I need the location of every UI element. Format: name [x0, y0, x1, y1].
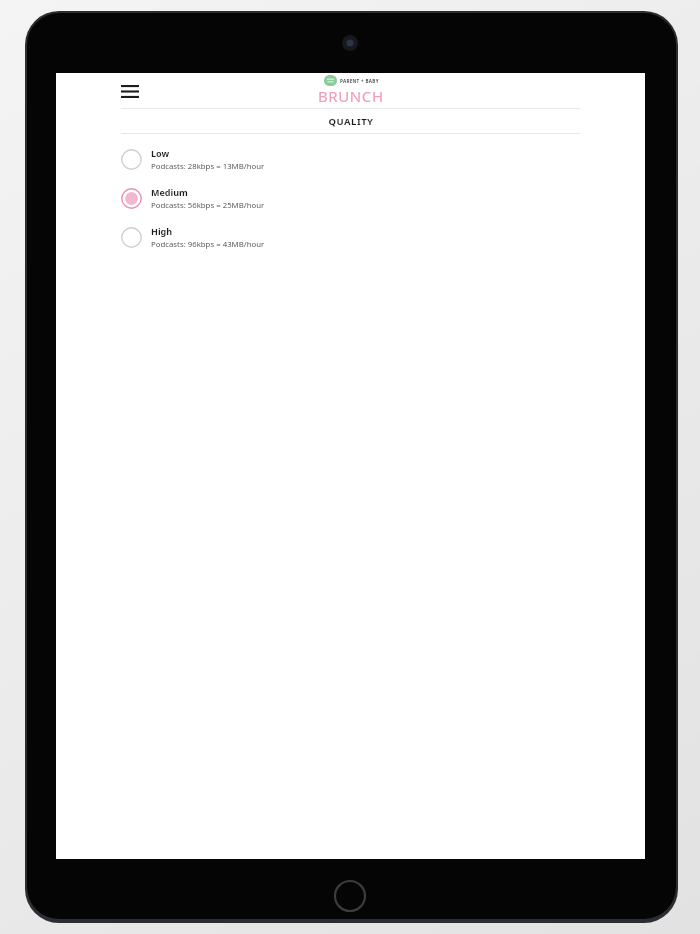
button[interactable]: High: [56, 218, 645, 257]
button[interactable]: Low: [56, 140, 645, 179]
staticText: Podcasts: 96kbps = 43MB/hour: [151, 239, 265, 250]
staticText: Podcasts: 56kbps = 25MB/hour: [151, 200, 265, 211]
staticText: QUALITY: [328, 115, 374, 128]
staticText: PARENT + BABY: [340, 78, 379, 84]
staticText: Low: [151, 147, 170, 159]
staticText: BRUNCH: [318, 86, 384, 106]
staticText: Podcasts: 28kbps = 13MB/hour: [151, 161, 265, 172]
button[interactable]: Menu: [118, 79, 142, 103]
button[interactable]: PARENT + BABY: [318, 75, 384, 106]
staticText: Medium: [151, 186, 188, 198]
staticText: High: [151, 225, 173, 237]
button[interactable]: Medium: [56, 179, 645, 218]
